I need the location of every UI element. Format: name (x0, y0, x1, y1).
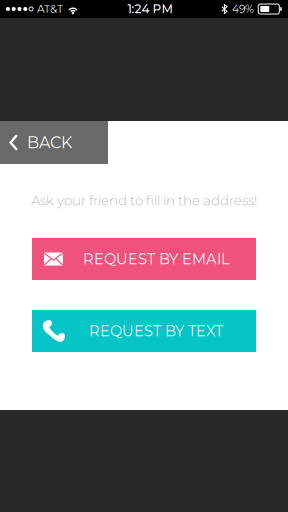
staticText: REQUEST BY TEXT (89, 322, 223, 340)
staticText: AT&T (37, 2, 63, 15)
staticText: REQUEST BY EMAIL (83, 250, 230, 268)
staticText: BACK (27, 133, 72, 152)
button[interactable]: REQUEST BY EMAIL (32, 238, 256, 280)
button[interactable]: BACK (0, 121, 108, 164)
staticText: Ask your friend to fill in the address! (31, 192, 257, 209)
button[interactable]: REQUEST BY TEXT (32, 310, 256, 352)
staticText: 1:24 PM (127, 2, 172, 16)
staticText: 49% (232, 2, 254, 15)
